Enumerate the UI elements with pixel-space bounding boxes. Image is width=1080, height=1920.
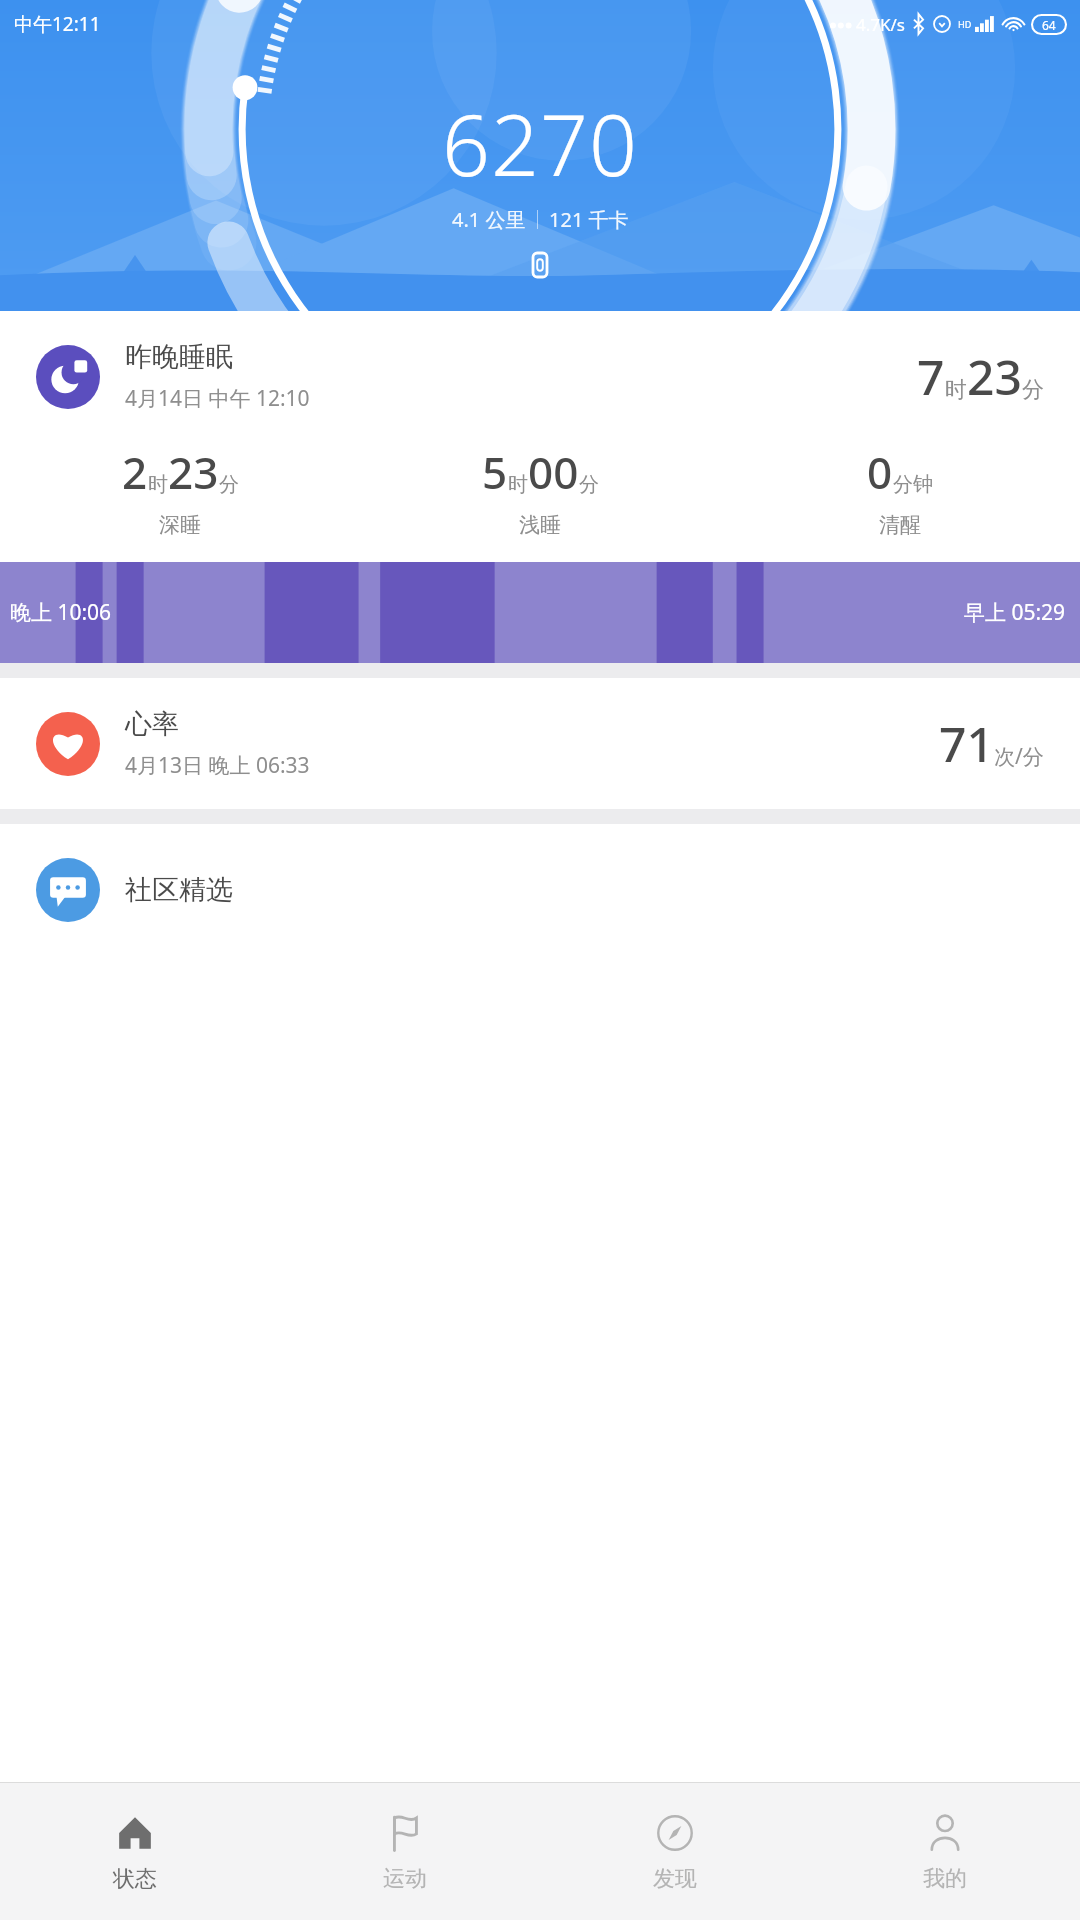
- staticText: 昨晚睡眠: [125, 340, 233, 374]
- staticText: 4.1 公里: [452, 206, 526, 233]
- staticText: 状态: [113, 1865, 157, 1893]
- staticText: 分: [219, 472, 239, 497]
- staticText: 4月14日 中午 12:10: [125, 384, 310, 413]
- staticText: 121 千卡: [549, 206, 629, 233]
- staticText: 4.7K/s: [856, 13, 905, 36]
- staticText: 64: [1042, 17, 1056, 33]
- button[interactable]: 我的: [810, 1783, 1080, 1920]
- button[interactable]: 状态: [0, 1783, 270, 1920]
- button[interactable]: 社区精选: [0, 824, 1080, 955]
- staticText: 运动: [383, 1865, 427, 1893]
- staticText: 时: [945, 376, 967, 404]
- staticText: 7: [917, 344, 945, 409]
- staticText: 5: [482, 442, 508, 502]
- staticText: 中午12:11: [14, 11, 101, 37]
- staticText: 晚上 10:06: [10, 598, 112, 627]
- button[interactable]: 昨晚睡眠: [0, 311, 1080, 663]
- staticText: 00: [528, 442, 579, 502]
- staticText: 深睡: [159, 512, 201, 538]
- button[interactable]: 心率: [0, 678, 1080, 809]
- staticText: 浅睡: [519, 512, 561, 538]
- staticText: 0: [867, 442, 893, 502]
- button[interactable]: 发现: [540, 1783, 810, 1920]
- staticText: 时: [148, 472, 168, 497]
- staticText: 23: [967, 344, 1022, 409]
- other: 设备: [533, 253, 547, 277]
- staticText: HD: [958, 18, 972, 30]
- staticText: 6270: [442, 86, 638, 200]
- staticText: 早上 05:29: [964, 598, 1066, 627]
- staticText: 社区精选: [125, 873, 233, 907]
- staticText: 次/分: [994, 742, 1044, 771]
- staticText: 发现: [653, 1865, 697, 1893]
- staticText: 23: [168, 442, 219, 502]
- staticText: 心率: [125, 707, 179, 741]
- staticText: 71: [939, 711, 994, 776]
- staticText: 分: [1022, 376, 1044, 404]
- staticText: 我的: [923, 1865, 967, 1893]
- staticText: 清醒: [879, 512, 921, 538]
- button[interactable]: 运动: [270, 1783, 540, 1920]
- staticText: 分: [579, 472, 599, 497]
- staticText: 4月13日 晚上 06:33: [125, 751, 310, 780]
- staticText: 分钟: [893, 472, 933, 497]
- staticText: 时: [508, 472, 528, 497]
- staticText: 2: [122, 442, 148, 502]
